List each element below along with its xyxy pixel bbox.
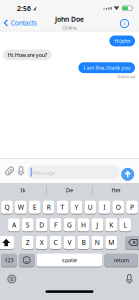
button[interactable]: H [77,218,89,231]
staticText: S [26,220,30,229]
staticText: F [54,220,57,229]
button[interactable]: I [98,201,110,214]
button[interactable]: B [77,236,89,249]
button[interactable]: R [43,201,54,214]
button[interactable]: Y [71,201,82,214]
button[interactable]: S [22,218,34,231]
staticText: T [60,203,64,212]
button[interactable]: E [29,201,41,214]
button[interactable]: Message [27,165,119,179]
staticText: K [109,220,113,229]
staticText: John Doe [55,15,84,24]
staticText: D [39,220,44,229]
button[interactable]: J [91,218,103,231]
staticText: G [67,220,72,229]
staticText: E [33,203,37,212]
staticText: Contacts [11,19,37,27]
staticText: I [103,203,105,212]
staticText: Hi John [114,37,130,44]
button[interactable]: Q [1,201,13,214]
button[interactable]: F [50,218,61,231]
staticText: X [40,238,44,247]
button[interactable]: Het [93,183,139,197]
staticText: R [47,203,51,212]
staticText: N [95,238,100,247]
staticText: Het [111,187,120,194]
button[interactable]: Info [120,19,129,28]
button[interactable]: return [104,254,138,267]
button[interactable]: O [112,201,124,214]
button[interactable]: V [64,236,75,249]
button[interactable]: N [91,236,103,249]
staticText: Hi. How are you? [8,51,47,58]
button[interactable]: Next keyboard [8,275,16,283]
staticText: P [130,203,134,212]
staticText: M [108,238,114,247]
staticText: Ik [20,187,25,194]
staticText: O [116,203,121,212]
button[interactable]: Delete [125,236,139,249]
button[interactable]: Back [3,19,37,27]
button[interactable]: G [64,218,75,231]
button[interactable]: Ik [0,183,46,197]
button[interactable]: T [57,201,68,214]
staticText: J [96,220,98,229]
button[interactable]: L [119,218,131,231]
staticText: V [67,238,71,247]
staticText: W [18,203,24,212]
staticText: i [124,20,125,27]
button[interactable]: Send [121,168,134,181]
button[interactable]: M [105,236,117,249]
staticText: Online [62,24,77,31]
staticText: spatie [62,257,77,264]
button[interactable]: Voice message [17,166,25,176]
button[interactable]: 123 [1,254,17,267]
button[interactable]: A [8,218,20,231]
staticText: L [124,220,127,229]
staticText: Y [74,203,78,212]
staticText: 2:56 [17,4,31,13]
button[interactable]: spatie [37,254,102,267]
button[interactable]: Emoji [19,254,34,267]
staticText: Q [4,203,9,212]
button[interactable]: W [15,201,27,214]
button[interactable]: P [126,201,138,214]
staticText: C [54,238,58,247]
button[interactable]: X [36,236,47,249]
staticText: I am fine, thank you [83,64,130,71]
button[interactable]: K [105,218,117,231]
staticText: Z [26,238,30,247]
staticText: De [66,187,73,194]
button[interactable]: D [36,218,47,231]
staticText: A [12,220,16,229]
staticText: Delivered [117,74,134,79]
button[interactable]: Z [22,236,34,249]
staticText: Message [32,169,55,176]
staticText: return [114,257,129,264]
button[interactable]: De [47,183,92,197]
button[interactable]: U [84,201,96,214]
staticText: B [81,238,85,247]
button[interactable]: C [50,236,61,249]
staticText: H [81,220,86,229]
button[interactable]: Dictate [125,274,133,284]
staticText: U [88,203,93,212]
button[interactable]: Attach [4,166,14,176]
button[interactable]: Shift [0,236,14,249]
staticText: 123 [4,257,13,264]
